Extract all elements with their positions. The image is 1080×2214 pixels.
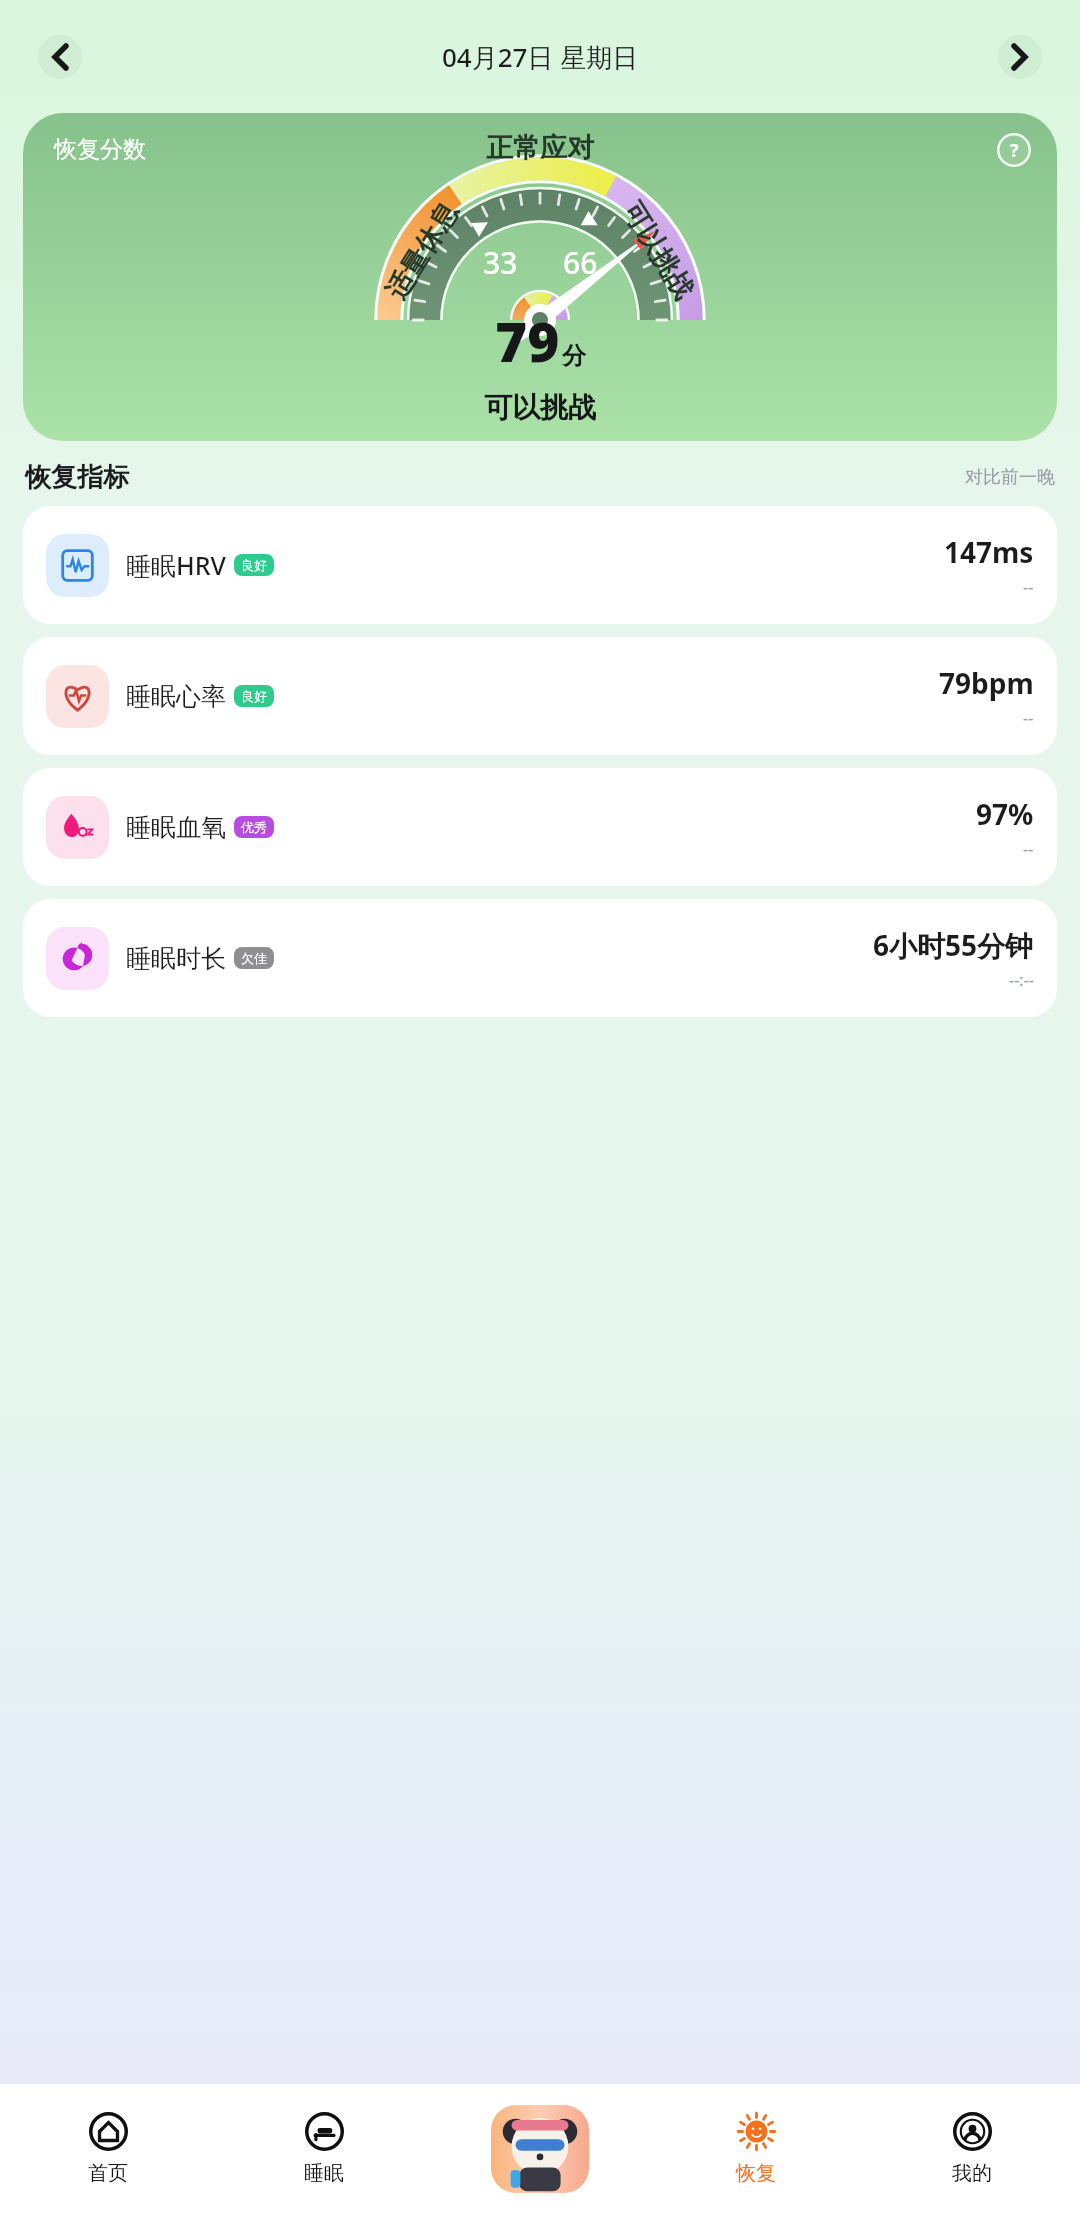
button[interactable]: 睡眠时长	[23, 899, 1057, 1017]
button[interactable]: 我的	[864, 2084, 1080, 2214]
staticText: 我的	[952, 2161, 992, 2186]
staticText: 79	[495, 303, 560, 378]
button[interactable]: 睡眠HRV	[23, 506, 1057, 624]
staticText: 6小时55分钟	[873, 926, 1034, 964]
staticText: 睡眠血氧	[126, 812, 226, 843]
button[interactable]: Assistant	[491, 2105, 589, 2193]
staticText: 分	[562, 341, 586, 371]
staticText: 33	[483, 242, 518, 283]
staticText: 04月27日 星期日	[442, 39, 639, 75]
staticText: 睡眠HRV	[126, 548, 226, 582]
staticText: 睡眠心率	[126, 681, 226, 712]
button[interactable]: 恢复分数	[23, 113, 1057, 441]
staticText: --:--	[1009, 969, 1034, 991]
staticText: 对比前一晚	[965, 466, 1055, 489]
staticText: 恢复指标	[25, 461, 129, 494]
staticText: 可以挑战	[615, 196, 701, 306]
button[interactable]: 睡眠心率	[23, 637, 1057, 755]
button[interactable]: 睡眠血氧	[23, 768, 1057, 886]
staticText: 适量休息	[379, 196, 465, 306]
staticText: 正常应对	[486, 131, 594, 165]
staticText: 首页	[88, 2161, 128, 2186]
button[interactable]: 恢复	[648, 2084, 864, 2214]
staticText: 良好	[241, 688, 267, 704]
staticText: 恢复分数	[54, 135, 146, 164]
staticText: --	[1023, 576, 1034, 598]
button[interactable]: 睡眠	[216, 2084, 432, 2214]
staticText: 欠佳	[241, 950, 267, 966]
staticText: 79bpm	[939, 664, 1034, 702]
staticText: 66	[563, 242, 598, 283]
staticText: 良好	[241, 557, 267, 573]
staticText: 睡眠时长	[126, 943, 226, 974]
staticText: 147ms	[944, 533, 1034, 571]
button[interactable]: Previous day	[38, 35, 82, 79]
staticText: 恢复	[736, 2161, 776, 2186]
staticText: --	[1023, 838, 1034, 860]
staticText: --	[1023, 707, 1034, 729]
button[interactable]: Help	[997, 133, 1031, 167]
staticText: 优秀	[241, 819, 267, 835]
button[interactable]: 首页	[0, 2084, 216, 2214]
staticText: 可以挑战	[484, 390, 596, 425]
staticText: 97%	[976, 795, 1034, 833]
staticText: 睡眠	[304, 2161, 344, 2186]
button[interactable]: Next day	[998, 35, 1042, 79]
staticText: ?	[1010, 138, 1019, 163]
